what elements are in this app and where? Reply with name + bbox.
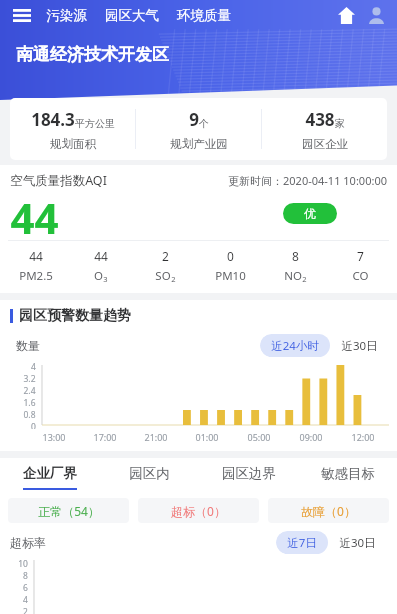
staticText: 近7日 [287,535,317,551]
button[interactable]: 0 [198,248,263,284]
staticText: 2 [23,606,28,614]
button[interactable]: 优 [283,203,337,224]
staticText: 44 [94,248,108,264]
staticText: 更新时间：2020-04-11 10:00:00 [228,173,387,188]
staticText: 敏感目标 [321,465,375,482]
staticText: 园区企业 [302,137,348,151]
staticText: 园区边界 [222,465,276,482]
staticText: 9 [189,108,199,131]
button[interactable]: 超标（0） [138,498,259,523]
staticText: 438 [305,108,335,131]
staticText: 优 [304,206,316,221]
staticText: 企业厂界 [23,465,77,482]
button[interactable]: 2 [133,248,198,284]
button[interactable]: Profile [363,2,389,28]
staticText: 0 [31,421,36,429]
staticText: 个 [199,117,209,130]
button[interactable]: 污染源 [46,7,87,24]
staticText: 2 [162,248,169,264]
staticText: 近24小时 [271,338,319,354]
staticText: 2 [302,274,307,284]
button[interactable]: 438 [262,98,387,160]
button[interactable]: 企业厂界 [0,465,100,490]
button[interactable]: Home [333,2,359,28]
button[interactable]: Menu [8,1,36,29]
staticText: 4 [31,361,36,373]
staticText: 环境质量 [177,7,231,24]
staticText: 2 [171,274,176,284]
staticText: 超标率 [10,535,46,550]
button[interactable]: 园区内 [100,465,199,490]
staticText: 园区内 [129,465,170,482]
button[interactable]: 7 [328,248,393,284]
button[interactable]: 近30日 [330,334,389,357]
button[interactable]: 44 [68,248,133,284]
staticText: 污染源 [46,7,87,24]
staticText: 超标（0） [171,503,226,519]
staticText: 数量 [16,338,40,353]
staticText: 近30日 [341,338,378,354]
staticText: 3.2 [23,373,36,385]
button[interactable]: 44 [4,248,68,284]
staticText: 13:00 [42,431,66,443]
staticText: 平方公里 [75,117,115,130]
staticText: 21:00 [144,431,168,443]
staticText: 8 [292,248,299,264]
staticText: 园区大气 [105,7,159,24]
button[interactable]: 8 [263,248,328,284]
staticText: 故障（0） [301,503,356,519]
staticText: 4 [23,594,28,606]
staticText: 空气质量指数AQI [10,172,107,189]
staticText: 0 [227,248,234,264]
staticText: 10 [18,558,28,570]
staticText: 正常（54） [38,503,100,519]
staticText: 0.8 [23,409,36,421]
staticText: 南通经济技术开发区 [16,44,169,65]
staticText: NO [284,268,302,284]
staticText: 2.4 [23,385,36,397]
staticText: 7 [357,248,364,264]
button[interactable]: 园区大气 [105,7,159,24]
staticText: 6 [23,582,28,594]
button[interactable]: 故障（0） [268,498,389,523]
staticText: 8 [23,570,28,582]
button[interactable]: 184.3 [10,98,135,160]
button[interactable]: 环境质量 [177,7,231,24]
staticText: 规划产业园 [170,137,228,151]
button[interactable]: 近30日 [328,531,387,554]
staticText: CO [352,268,369,284]
button[interactable]: 正常（54） [8,498,129,523]
staticText: O [94,268,103,284]
staticText: 05:00 [247,431,271,443]
staticText: PM10 [215,268,246,284]
staticText: PM2.5 [19,268,53,284]
button[interactable]: 近24小时 [260,334,330,357]
button[interactable]: 9 [136,98,261,160]
button[interactable]: 敏感目标 [298,465,397,490]
staticText: 规划面积 [50,137,96,151]
staticText: 01:00 [195,431,219,443]
staticText: 184.3 [31,108,75,131]
button[interactable]: 园区边界 [199,465,298,490]
staticText: 17:00 [93,431,117,443]
staticText: 44 [29,248,43,264]
staticText: SO [155,268,171,284]
staticText: 家 [335,117,345,130]
staticText: 3 [103,274,108,284]
staticText: 园区预警数量趋势 [19,307,131,325]
staticText: 近30日 [339,535,376,551]
staticText: 44 [10,189,59,237]
staticText: 1.6 [23,397,36,409]
staticText: 12:00 [351,431,375,443]
button[interactable]: 近7日 [276,531,328,554]
staticText: 09:00 [299,431,323,443]
